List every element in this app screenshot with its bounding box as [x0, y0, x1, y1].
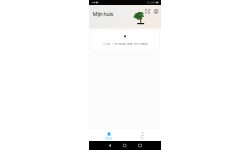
button[interactable]: Back: [107, 143, 112, 148]
button[interactable]: Scan: [144, 8, 151, 14]
button[interactable]: Account: [153, 8, 159, 14]
staticText: 12:09: [147, 1, 155, 4]
staticText: Huis: [105, 137, 112, 140]
button[interactable]: Home: [122, 143, 128, 148]
staticText: Tik op + om een apparaat toe te voegen: [102, 42, 147, 45]
button[interactable]: Recent apps: [137, 143, 143, 148]
staticText: Mij: [140, 137, 145, 140]
staticText: Mijn huis: [92, 11, 113, 17]
button[interactable]: Mij: [126, 130, 159, 141]
button[interactable]: Huis: [92, 130, 126, 141]
